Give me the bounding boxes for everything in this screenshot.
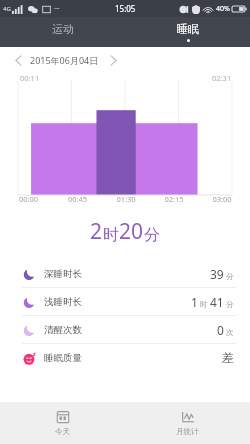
button[interactable]: 睡眠	[125, 17, 250, 47]
staticText: 分	[226, 300, 234, 309]
button[interactable]: 今天	[0, 402, 125, 444]
staticText: 02:15	[150, 194, 198, 204]
staticText: 41	[210, 294, 224, 310]
staticText: 清醒次数	[44, 324, 82, 336]
staticText: 浅睡时长	[44, 296, 82, 308]
staticText: 时	[200, 300, 208, 309]
staticText: 00:11	[20, 73, 40, 83]
staticText: 01:30	[102, 194, 150, 204]
staticText: 睡眠质量	[44, 352, 82, 364]
staticText: 时	[103, 225, 119, 245]
staticText: 睡眠	[177, 22, 199, 36]
staticText: 4G	[3, 5, 11, 13]
staticText: 深睡时长	[44, 268, 82, 280]
staticText: 2	[90, 217, 103, 246]
button[interactable]: 浅睡时长	[0, 288, 250, 315]
staticText: 月统计	[176, 427, 199, 436]
staticText: 20	[119, 217, 144, 246]
staticText: 0	[217, 322, 224, 338]
button[interactable]: 月统计	[125, 402, 250, 444]
button[interactable]: 运动	[0, 17, 125, 47]
staticText: 00:45	[53, 194, 102, 204]
button[interactable]: 清醒次数	[0, 316, 250, 343]
staticText: 15:05	[115, 3, 136, 14]
staticText: 差	[222, 350, 234, 365]
staticText: 03:00	[198, 194, 246, 204]
staticText: 00:00	[4, 194, 53, 204]
staticText: 39	[210, 266, 224, 282]
button[interactable]: Next day	[105, 52, 121, 68]
staticText: 02:31	[212, 73, 232, 83]
button[interactable]: Previous day	[10, 52, 26, 68]
staticText: 今天	[55, 427, 70, 436]
button[interactable]: 深睡时长	[0, 260, 250, 287]
staticText: 运动	[52, 22, 74, 36]
staticText: 1	[191, 294, 198, 310]
staticText: 次	[226, 328, 234, 337]
staticText: 分	[144, 225, 160, 245]
button[interactable]: 睡眠质量	[0, 344, 250, 371]
staticText: ···	[54, 4, 60, 14]
staticText: 2015年06月04日	[30, 54, 99, 66]
staticText: 分	[226, 272, 234, 281]
staticText: 40%	[216, 4, 230, 14]
